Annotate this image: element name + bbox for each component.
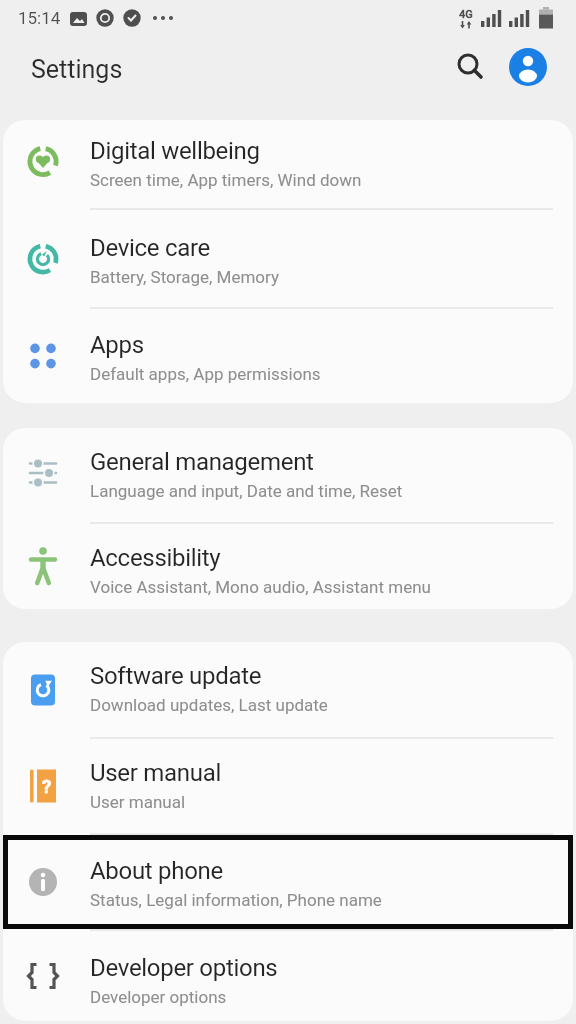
button[interactable]: Apps	[3, 309, 573, 403]
button[interactable]: Software update	[3, 642, 573, 737]
staticText: Accessibility	[90, 544, 221, 572]
staticText: Screen time, App timers, Wind down	[90, 170, 362, 190]
staticText: Battery, Storage, Memory	[90, 267, 280, 287]
staticText: User manual	[90, 759, 221, 787]
button[interactable]: Accessibility	[3, 524, 573, 609]
button[interactable]: Digital wellbeing	[3, 120, 573, 208]
button[interactable]: Device care	[3, 210, 573, 307]
staticText: ?	[42, 775, 52, 797]
staticText: Developer options	[90, 987, 227, 1007]
staticText: Voice Assistant, Mono audio, Assistant m…	[90, 577, 431, 597]
staticText: About phone	[90, 857, 223, 885]
staticText: 4G	[459, 8, 473, 21]
staticText: Digital wellbeing	[90, 137, 260, 165]
staticText: Apps	[90, 331, 144, 359]
staticText: Status, Legal information, Phone name	[90, 890, 382, 910]
button[interactable]: ?	[3, 739, 573, 833]
staticText: Download updates, Last update	[90, 695, 328, 715]
staticText: Software update	[90, 662, 262, 690]
staticText: Device care	[90, 234, 210, 262]
staticText: General management	[90, 448, 314, 476]
staticText: 15:14	[18, 8, 61, 28]
staticText: Settings	[31, 55, 123, 84]
staticText: Developer options	[90, 954, 278, 982]
button[interactable]: General management	[3, 428, 573, 522]
staticText: Default apps, App permissions	[90, 364, 321, 384]
button[interactable]: Developer options	[3, 931, 573, 1021]
button[interactable]	[508, 47, 548, 87]
button[interactable]: About phone	[3, 835, 573, 929]
button[interactable]	[455, 52, 485, 82]
staticText: Language and input, Date and time, Reset	[90, 481, 403, 501]
staticText: User manual	[90, 792, 186, 812]
